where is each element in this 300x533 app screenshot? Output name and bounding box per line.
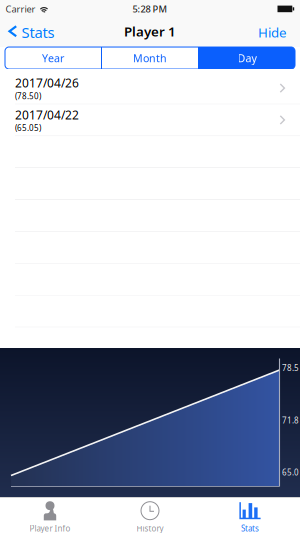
button[interactable]: History — [100, 497, 200, 533]
staticText: 65.0 — [282, 467, 299, 478]
staticText: 2017/04/22 — [15, 107, 79, 123]
staticText: Stats — [22, 22, 55, 42]
button[interactable]: 2017/04/26 — [0, 72, 300, 104]
button[interactable]: Hide — [248, 18, 300, 46]
button[interactable]: Player Info — [0, 497, 100, 533]
staticText: Year — [42, 51, 64, 65]
staticText: History — [136, 523, 163, 533]
staticText: 2017/04/26 — [15, 75, 79, 91]
staticText: (78.50) — [15, 91, 41, 101]
staticText: Player 1 — [124, 22, 176, 40]
button[interactable]: Stats — [200, 497, 300, 533]
button[interactable]: Day — [199, 47, 295, 69]
button[interactable]: 2017/04/22 — [0, 104, 300, 136]
button[interactable]: Year — [5, 47, 101, 69]
staticText: Day — [237, 51, 256, 65]
staticText: Month — [133, 51, 167, 65]
staticText: Hide — [258, 23, 287, 41]
staticText: Player Info — [29, 523, 70, 533]
staticText: 5:28 PM — [132, 3, 167, 15]
staticText: Carrier — [5, 3, 35, 15]
button[interactable]: Month — [102, 47, 198, 69]
staticText: 71.8 — [282, 415, 299, 426]
staticText: Stats — [241, 523, 259, 533]
staticText: (65.05) — [15, 123, 41, 133]
staticText: 78.5 — [282, 363, 299, 373]
button[interactable]: Stats — [0, 18, 65, 46]
